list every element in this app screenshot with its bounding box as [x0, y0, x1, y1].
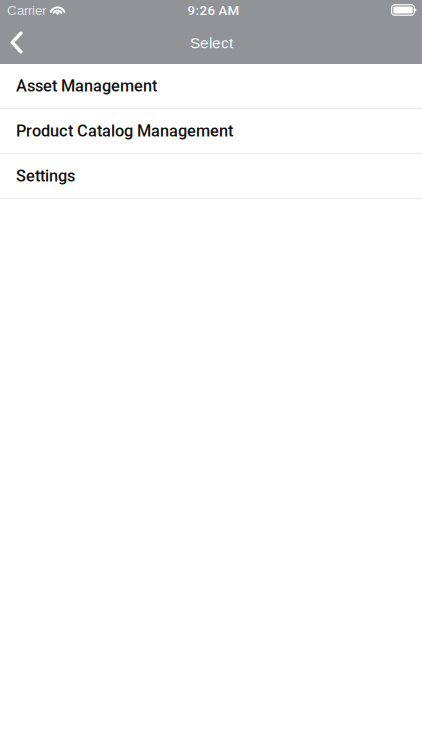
staticText: Carrier: [7, 3, 46, 18]
staticText: Select: [190, 34, 233, 51]
staticText: Asset Management: [16, 76, 157, 95]
button[interactable]: Back: [0, 20, 39, 64]
staticText: Settings: [16, 166, 75, 185]
button[interactable]: Settings: [0, 154, 422, 199]
button[interactable]: Product Catalog Management: [0, 109, 422, 154]
button[interactable]: Asset Management: [0, 64, 422, 109]
staticText: Product Catalog Management: [16, 121, 233, 140]
staticText: 9:26 AM: [187, 3, 239, 18]
